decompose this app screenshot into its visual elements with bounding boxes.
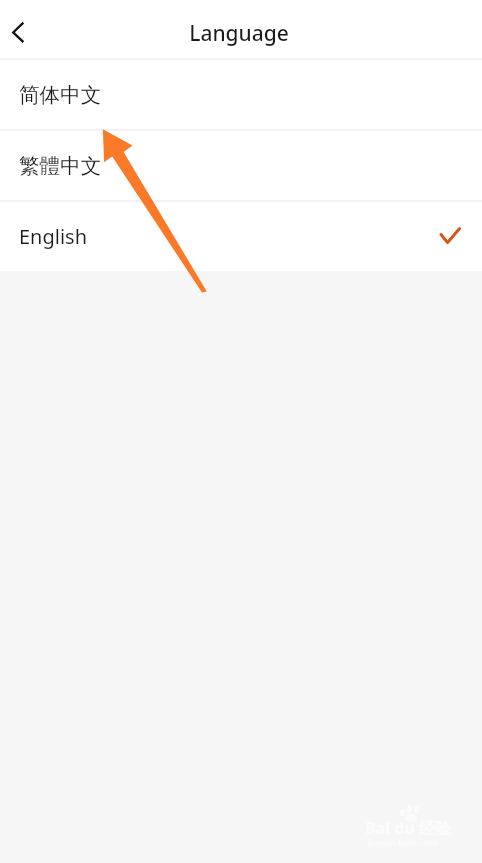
staticText: English — [19, 223, 88, 250]
other: Selected — [438, 225, 462, 249]
button[interactable]: 简体中文 — [0, 60, 482, 129]
staticText: 简体中文 — [19, 82, 102, 108]
button[interactable]: English — [0, 202, 482, 271]
button[interactable]: Back — [0, 5, 48, 53]
staticText: Language — [189, 19, 289, 48]
staticText: 繁體中文 — [19, 153, 102, 179]
button[interactable]: 繁體中文 — [0, 131, 482, 200]
